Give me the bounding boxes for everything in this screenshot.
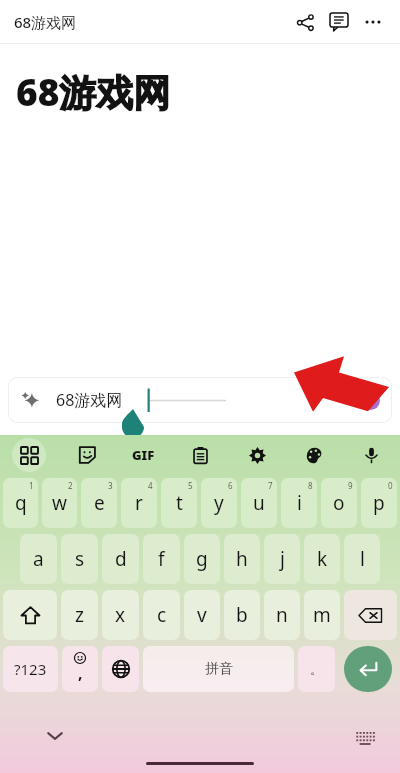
button[interactable]: More options — [356, 5, 390, 39]
button[interactable]: Voice input — [343, 435, 400, 475]
staticText: f — [158, 546, 165, 572]
button[interactable]: p — [361, 478, 397, 528]
staticText: 3 — [108, 480, 113, 491]
button[interactable]: Shift — [3, 590, 57, 640]
button[interactable]: Backspace — [344, 590, 397, 640]
button[interactable]: Apps — [0, 435, 58, 475]
staticText: 4 — [148, 480, 153, 491]
button[interactable]: g — [184, 534, 220, 584]
button[interactable]: Enter — [344, 646, 392, 692]
button[interactable]: Stickers — [58, 435, 115, 475]
staticText: 2 — [68, 480, 73, 491]
staticText: o — [333, 490, 345, 516]
staticText: , — [78, 662, 83, 684]
staticText: w — [52, 490, 67, 516]
button[interactable]: u — [241, 478, 277, 528]
staticText: c — [157, 602, 167, 628]
button[interactable]: f — [143, 534, 180, 584]
staticText: h — [236, 546, 248, 572]
staticText: a — [33, 546, 44, 572]
button[interactable]: i — [281, 478, 317, 528]
button[interactable]: y — [201, 478, 237, 528]
staticText: 7 — [268, 480, 273, 491]
staticText: v — [197, 602, 207, 628]
staticText: l — [360, 546, 365, 572]
button[interactable]: r — [121, 478, 157, 528]
staticText: ?123 — [14, 659, 47, 679]
button[interactable]: j — [264, 534, 300, 584]
button[interactable]: GIF — [115, 435, 172, 475]
staticText: 6 — [228, 480, 233, 491]
button[interactable]: a — [20, 534, 57, 584]
staticText: GIF — [132, 446, 155, 464]
staticText: t — [176, 490, 183, 516]
staticText: s — [75, 546, 85, 572]
button[interactable]: k — [304, 534, 340, 584]
button[interactable]: Clipboard — [172, 435, 229, 475]
staticText: 。 — [310, 661, 323, 677]
staticText: 1 — [29, 480, 34, 491]
button[interactable]: q — [3, 478, 38, 528]
button[interactable]: x — [102, 590, 139, 640]
staticText: j — [280, 546, 285, 572]
staticText: n — [276, 602, 288, 628]
staticText: 0 — [388, 480, 393, 491]
staticText: z — [75, 602, 84, 628]
staticText: 9 — [348, 480, 353, 491]
button[interactable]: w — [42, 478, 77, 528]
staticText: k — [317, 546, 328, 572]
staticText: 68游戏网 — [14, 12, 77, 32]
staticText: y — [214, 490, 224, 516]
button[interactable]: n — [264, 590, 300, 640]
button[interactable]: b — [224, 590, 260, 640]
button[interactable]: Share — [288, 5, 322, 39]
button[interactable]: c — [143, 590, 180, 640]
staticText: b — [236, 602, 248, 628]
button[interactable]: 拼音 — [143, 646, 294, 692]
staticText: m — [313, 602, 331, 628]
staticText: q — [15, 490, 27, 516]
button[interactable]: z — [61, 590, 98, 640]
staticText: 8 — [308, 480, 313, 491]
button[interactable]: Switch language — [102, 646, 139, 692]
button[interactable]: Emoji and comma — [62, 646, 98, 692]
button[interactable]: d — [102, 534, 139, 584]
button[interactable]: l — [344, 534, 380, 584]
button[interactable]: e — [81, 478, 117, 528]
button[interactable]: Comments — [322, 5, 356, 39]
button[interactable]: o — [321, 478, 357, 528]
button[interactable]: Send — [361, 391, 380, 410]
staticText: i — [297, 490, 302, 516]
button[interactable]: s — [61, 534, 98, 584]
button[interactable]: Period — [298, 646, 335, 692]
button[interactable]: v — [184, 590, 220, 640]
staticText: 68游戏网 — [56, 389, 123, 411]
staticText: 5 — [188, 480, 193, 491]
button[interactable]: Settings — [229, 435, 286, 475]
button[interactable]: 68游戏网 — [8, 377, 392, 423]
staticText: r — [135, 490, 143, 516]
button[interactable]: t — [161, 478, 197, 528]
staticText: x — [115, 602, 126, 628]
button[interactable]: ?123 — [3, 646, 58, 692]
staticText: e — [94, 490, 105, 516]
staticText: d — [115, 546, 127, 572]
button[interactable]: m — [304, 590, 340, 640]
button[interactable]: h — [224, 534, 260, 584]
button[interactable]: Themes — [286, 435, 343, 475]
staticText: g — [196, 546, 208, 572]
staticText: 拼音 — [205, 660, 233, 678]
staticText: 68游戏网 — [16, 66, 171, 117]
staticText: u — [253, 490, 265, 516]
staticText: p — [373, 490, 385, 516]
